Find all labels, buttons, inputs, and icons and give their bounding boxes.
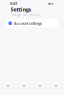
staticText: Account settings [14, 21, 42, 26]
staticText: ▬ [51, 2, 54, 5]
staticText: ▮▮ [48, 2, 50, 5]
staticText: 9:41 [10, 1, 17, 6]
staticText: Tab [6, 88, 9, 89]
staticText: Tab [54, 88, 57, 89]
staticText: Tab [38, 88, 41, 89]
staticText: Manage your account [12, 13, 40, 16]
staticText: Settings [10, 6, 31, 13]
staticText: Tab [22, 88, 25, 89]
